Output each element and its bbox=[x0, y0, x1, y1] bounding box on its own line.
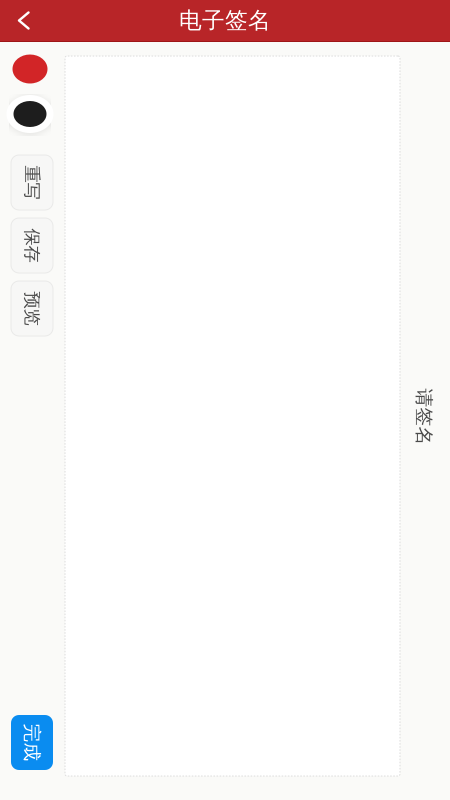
staticText: 完成 bbox=[13, 731, 51, 754]
button[interactable]: Black ink bbox=[6, 94, 54, 134]
staticText: 保存 bbox=[15, 235, 49, 256]
staticText: 重写 bbox=[15, 172, 49, 193]
button[interactable]: Back bbox=[0, 0, 43, 41]
button[interactable]: 重写 bbox=[11, 155, 53, 210]
button[interactable]: Red ink bbox=[6, 49, 54, 89]
button[interactable]: 保存 bbox=[11, 218, 53, 273]
staticText: 预览 bbox=[15, 298, 49, 319]
button[interactable]: 完成 bbox=[11, 715, 53, 770]
staticText: 请签名 bbox=[395, 405, 450, 429]
button[interactable]: 预览 bbox=[11, 281, 53, 336]
staticText: 电子签名 bbox=[179, 6, 271, 35]
